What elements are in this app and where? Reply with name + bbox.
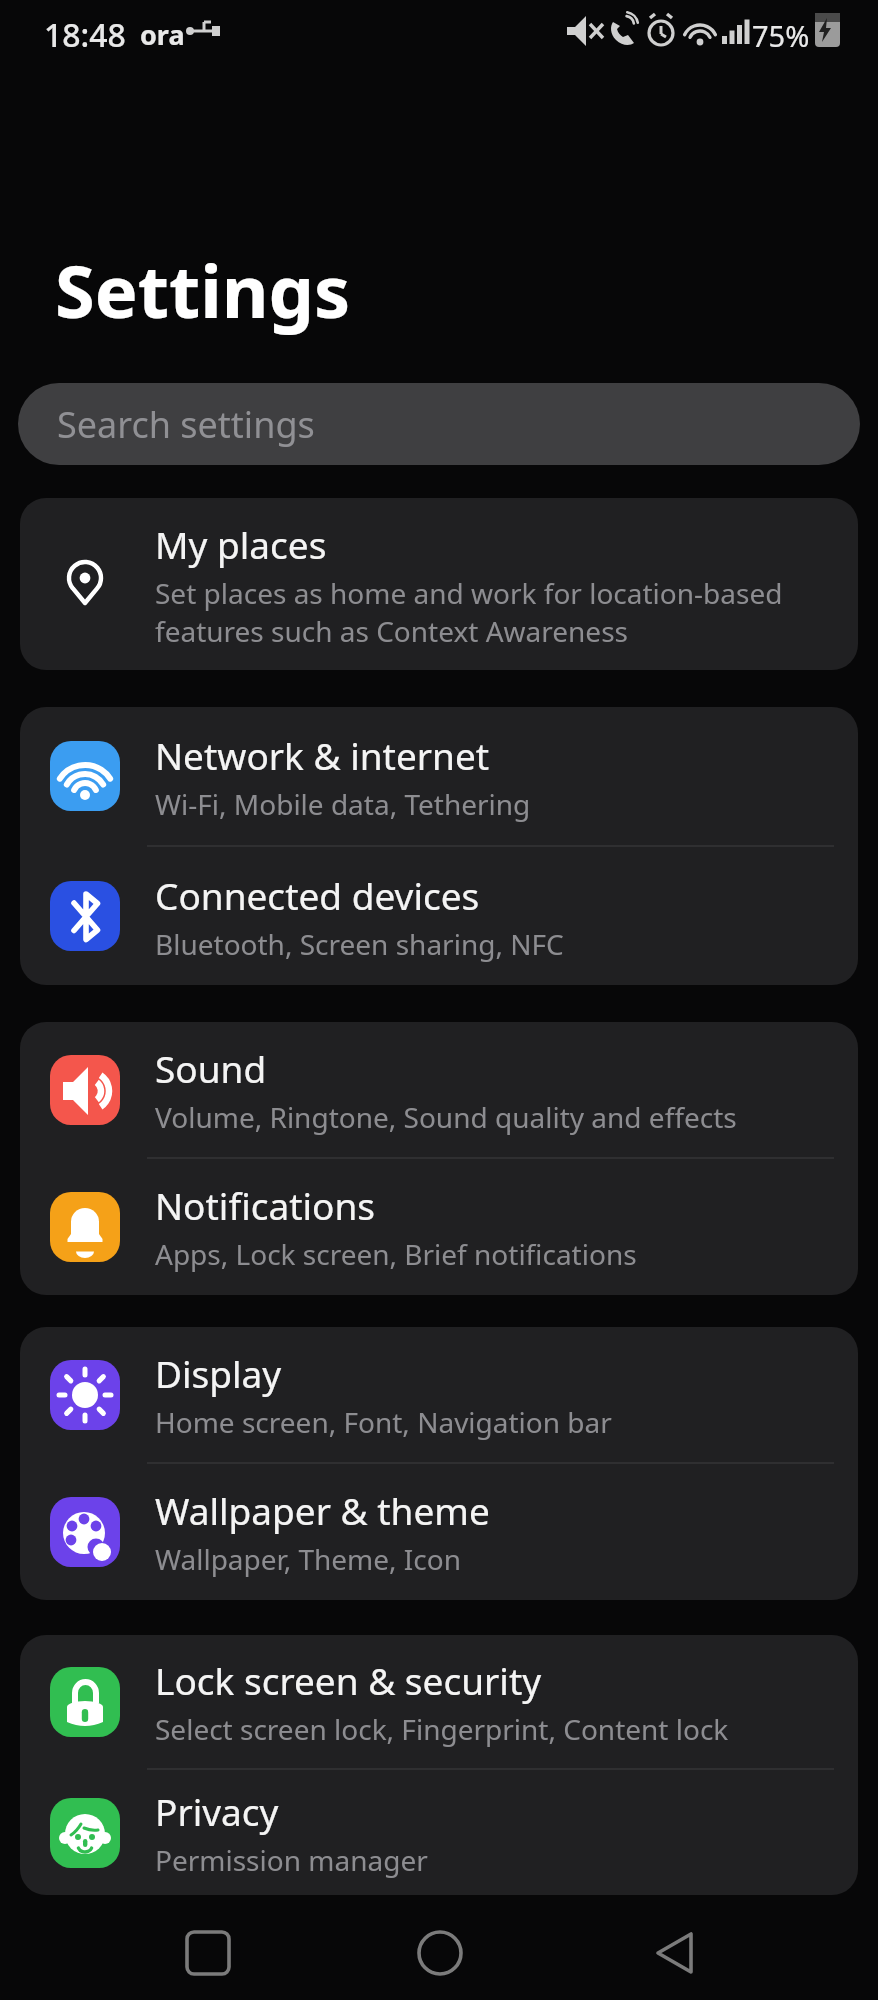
- staticText: Connected devices: [155, 870, 480, 920]
- staticText: Lock screen & security: [155, 1655, 542, 1705]
- button[interactable]: Display: [20, 1327, 858, 1462]
- staticText: Wi-Fi, Mobile data, Tethering: [155, 785, 531, 823]
- button[interactable]: Network & internet: [20, 707, 858, 845]
- staticText: Home screen, Font, Navigation bar: [155, 1403, 612, 1441]
- staticText: Display: [155, 1348, 282, 1398]
- button[interactable]: [585, 1895, 878, 2000]
- button[interactable]: Wallpaper & theme: [20, 1464, 858, 1599]
- staticText: 75%: [752, 16, 810, 55]
- staticText: Select screen lock, Fingerprint, Content…: [155, 1710, 729, 1748]
- staticText: Volume, Ringtone, Sound quality and effe…: [155, 1098, 737, 1136]
- button[interactable]: Connected devices: [20, 847, 858, 985]
- staticText: 18:48: [44, 13, 126, 57]
- staticText: Notifications: [155, 1180, 376, 1230]
- staticText: Sound: [155, 1043, 267, 1093]
- staticText: Privacy: [155, 1786, 279, 1836]
- staticText: Settings: [55, 241, 351, 339]
- button[interactable]: Privacy: [20, 1770, 858, 1895]
- button[interactable]: [0, 1895, 292, 2000]
- button[interactable]: My places: [20, 498, 858, 670]
- staticText: Apps, Lock screen, Brief notifications: [155, 1235, 637, 1273]
- staticText: Wallpaper & theme: [155, 1485, 490, 1535]
- staticText: ora: [140, 16, 185, 53]
- staticText: Network & internet: [155, 730, 490, 780]
- button[interactable]: Sound: [20, 1022, 858, 1157]
- staticText: My places: [155, 519, 327, 569]
- button[interactable]: [292, 1895, 585, 2000]
- staticText: Search settings: [57, 400, 315, 449]
- staticText: Permission manager: [155, 1841, 428, 1879]
- staticText: Wallpaper, Theme, Icon: [155, 1540, 462, 1578]
- button[interactable]: Search settings: [18, 383, 860, 465]
- staticText: Bluetooth, Screen sharing, NFC: [155, 925, 564, 963]
- button[interactable]: Notifications: [20, 1159, 858, 1294]
- staticText: Set places as home and work for location…: [155, 574, 783, 650]
- button[interactable]: Lock screen & security: [20, 1635, 858, 1768]
